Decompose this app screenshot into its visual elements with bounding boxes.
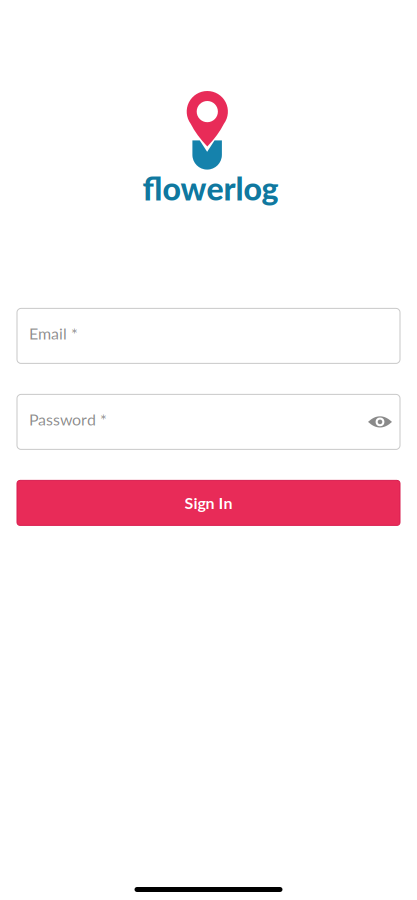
staticText: Password * <box>29 410 107 429</box>
staticText: Email * <box>29 324 78 343</box>
staticText: flowerlog <box>142 169 278 207</box>
staticText: Sign In <box>184 493 232 512</box>
button[interactable]: Sign In <box>17 480 400 525</box>
button[interactable]: Show password <box>356 406 392 438</box>
